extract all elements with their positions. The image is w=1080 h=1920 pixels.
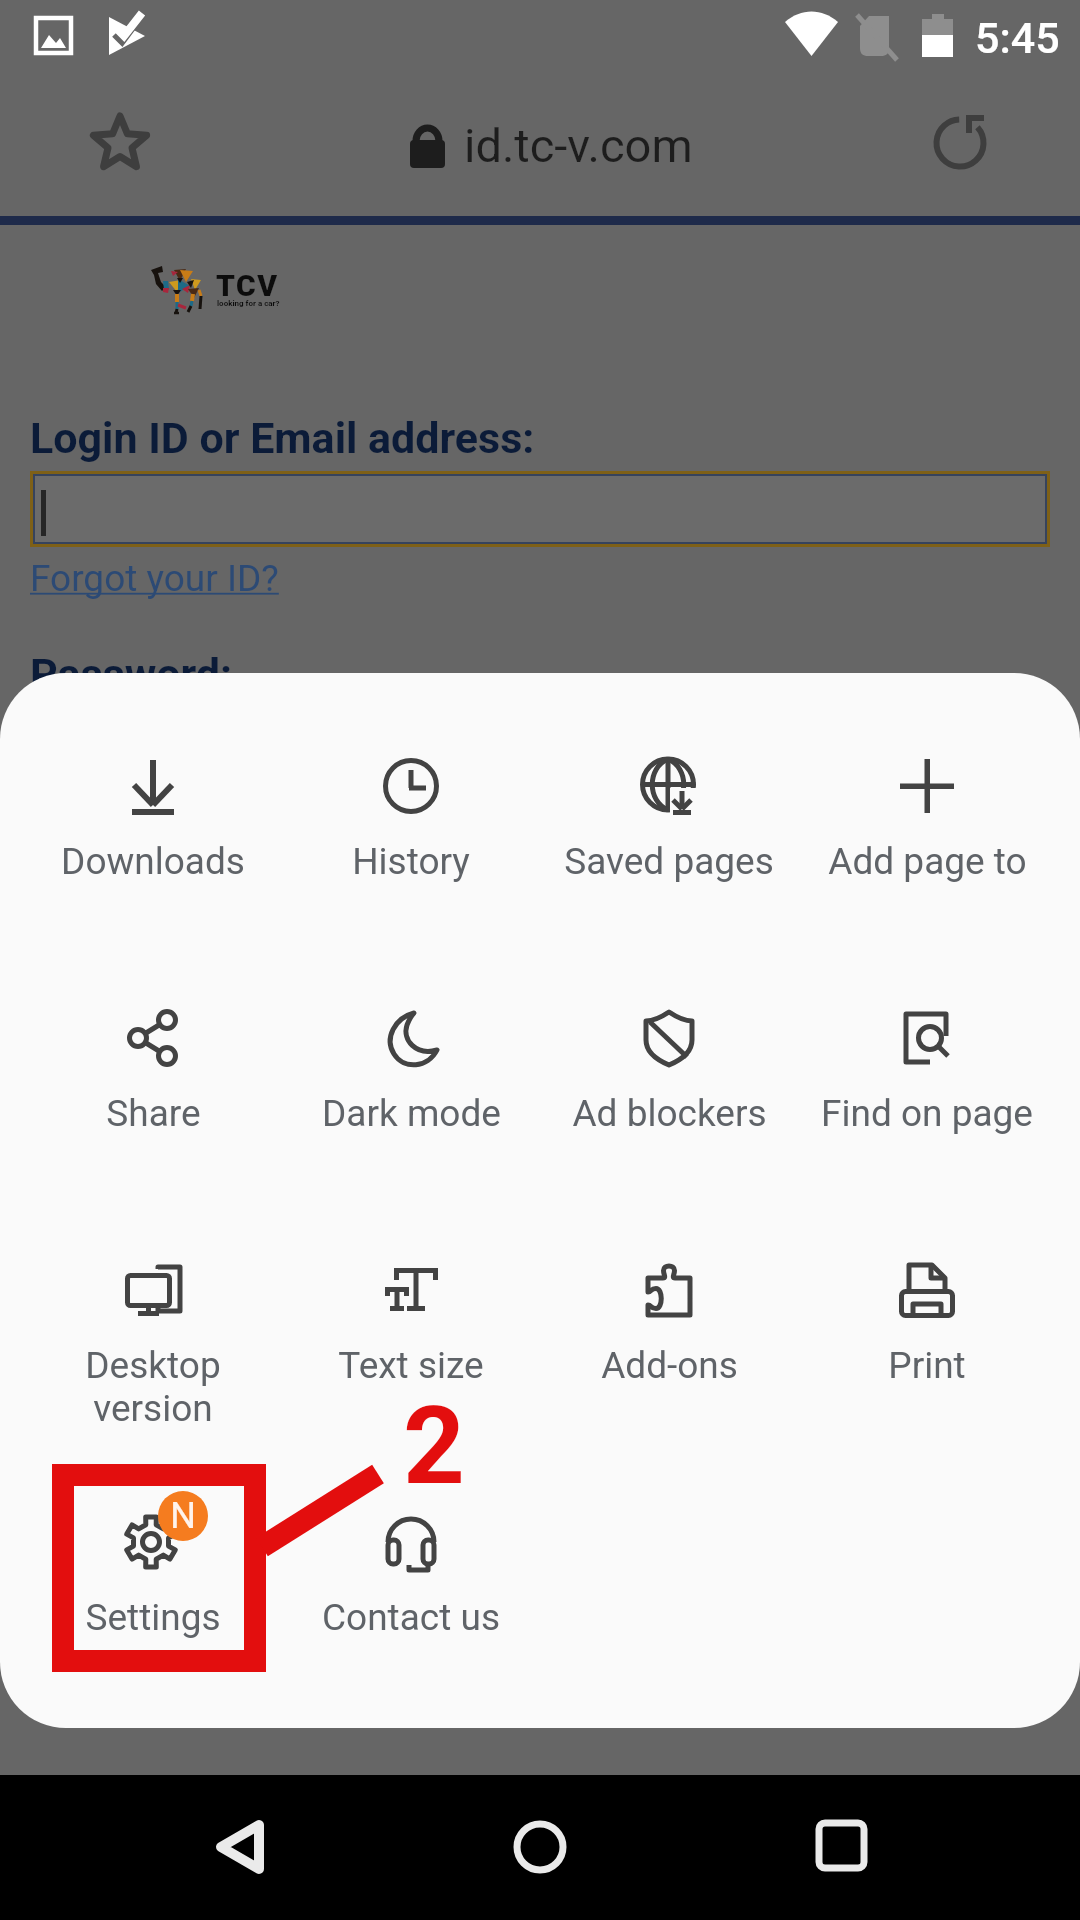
staticText: Saved pages	[564, 840, 774, 883]
staticText: Find on page	[821, 1092, 1033, 1135]
button[interactable]: Print	[798, 1230, 1056, 1426]
button[interactable]: Add-ons	[540, 1230, 798, 1426]
button[interactable]: Saved pages	[540, 726, 798, 922]
staticText: Add page to	[828, 840, 1027, 883]
staticText: Login ID or Email address:	[30, 413, 535, 463]
staticText: looking for a car?	[217, 299, 280, 308]
staticText: Add-ons	[601, 1344, 738, 1387]
button[interactable]: Home	[480, 1775, 600, 1920]
staticText: Downloads	[61, 840, 245, 883]
button[interactable]: Settings	[24, 1482, 282, 1678]
button[interactable]: Downloads	[24, 726, 282, 922]
staticText: Dark mode	[322, 1092, 501, 1135]
button[interactable]: Text size	[282, 1230, 540, 1426]
button[interactable]: History	[282, 726, 540, 922]
staticText: Desktop	[85, 1344, 221, 1387]
button[interactable]: Add page to	[798, 726, 1056, 922]
staticText: TCV	[216, 268, 279, 303]
button[interactable]: Contact us	[282, 1482, 540, 1678]
staticText: Text size	[338, 1344, 484, 1387]
staticText: version	[93, 1387, 213, 1426]
staticText: History	[352, 840, 470, 883]
button[interactable]: Ad blockers	[540, 978, 798, 1174]
button[interactable]: Recent apps	[780, 1775, 900, 1920]
staticText: Forgot your ID?	[30, 557, 279, 600]
staticText: Print	[888, 1344, 966, 1387]
staticText: Password:	[30, 649, 233, 699]
staticText: 2	[403, 1383, 465, 1510]
button[interactable]: Share	[24, 978, 282, 1174]
button[interactable]: Find on page	[798, 978, 1056, 1174]
staticText: id.tc-v.com	[464, 118, 693, 173]
staticText: Ad blockers	[572, 1092, 767, 1135]
staticText: Settings	[85, 1596, 221, 1639]
button[interactable]: Back	[180, 1775, 300, 1920]
button[interactable]: Dark mode	[282, 978, 540, 1174]
staticText: N	[170, 1495, 196, 1537]
button[interactable]: Desktop	[24, 1230, 282, 1426]
staticText: Share	[106, 1092, 201, 1135]
staticText: 5:45	[975, 13, 1060, 63]
staticText: Contact us	[322, 1596, 500, 1639]
